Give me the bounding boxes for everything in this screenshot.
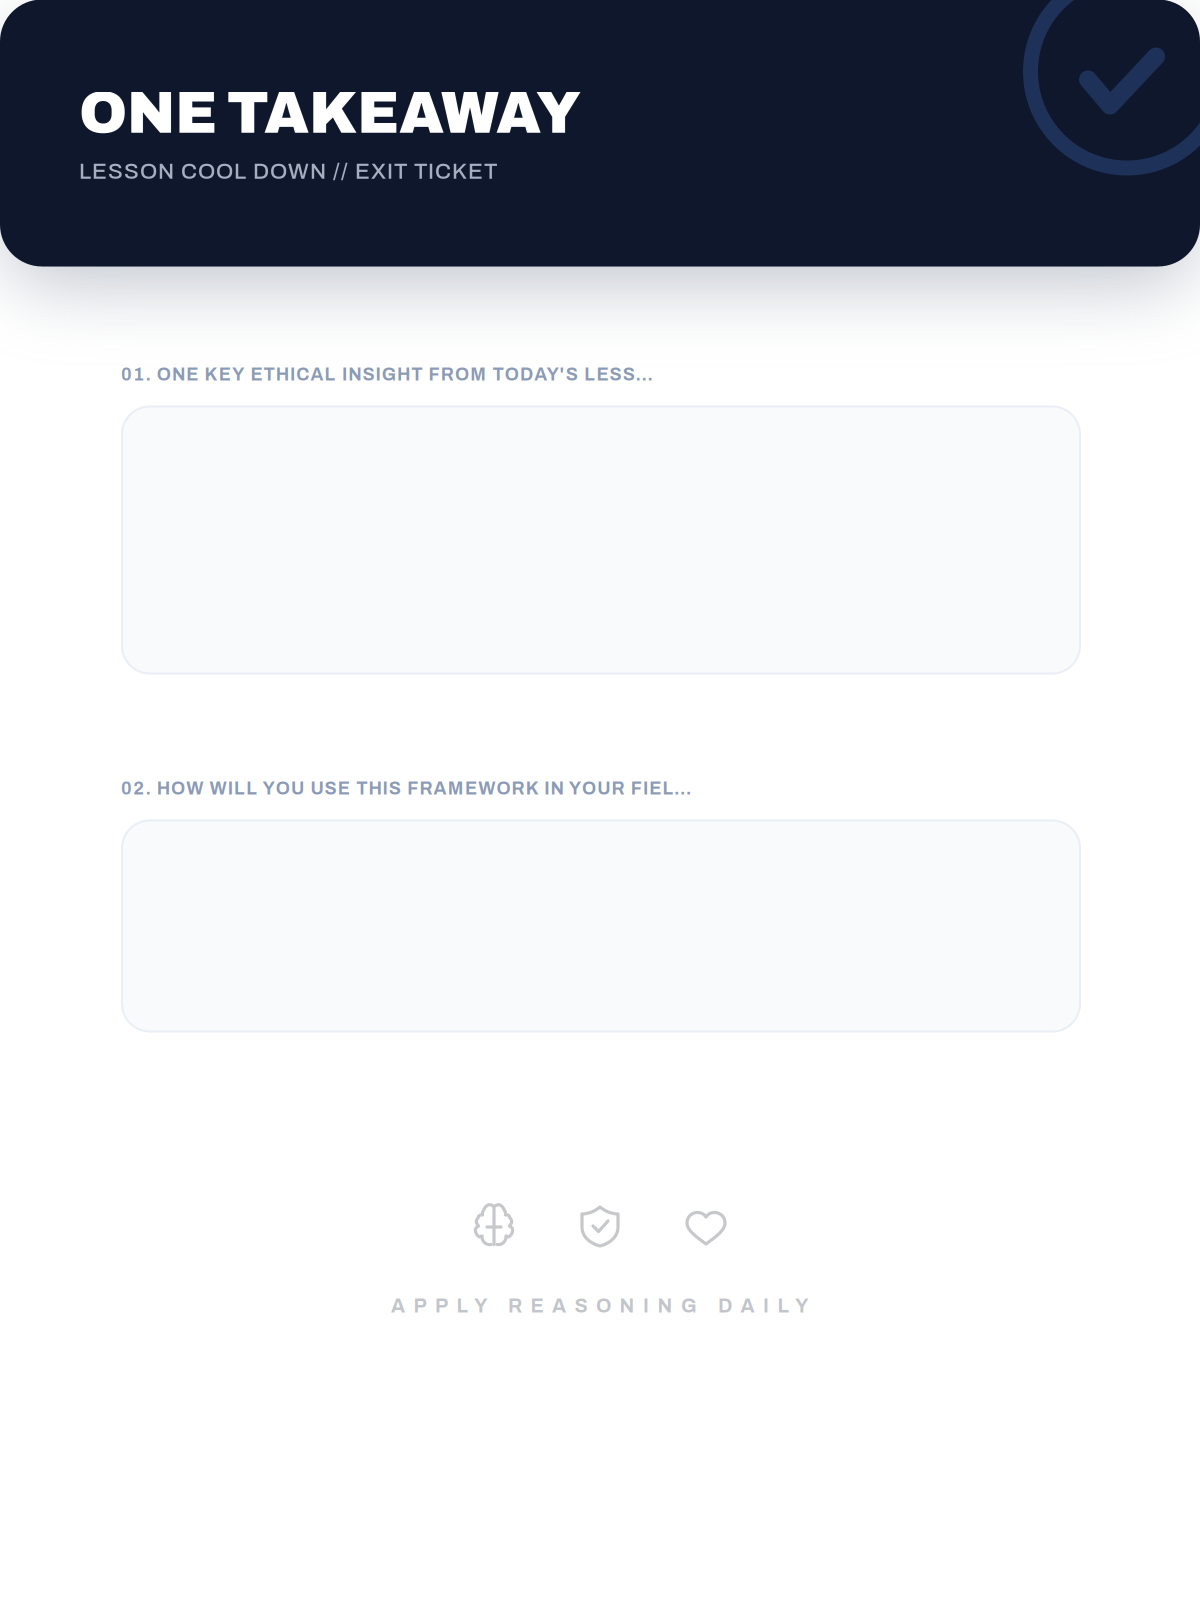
staticText: ONE TAKEAWAY <box>79 82 581 145</box>
staticText: 02. HOW WILL YOU USE THIS FRAMEWORK IN Y… <box>121 779 700 798</box>
button[interactable]: Integrity <box>576 1202 624 1250</box>
staticText: LESSON COOL DOWN // EXIT TICKET <box>79 159 497 183</box>
staticText: APPLY REASONING DAILY <box>391 1295 809 1317</box>
button[interactable]: Reasoning <box>470 1202 518 1250</box>
button[interactable]: Care <box>682 1202 730 1250</box>
staticText: 01. ONE KEY ETHICAL INSIGHT FROM TODAY'S… <box>121 365 664 384</box>
